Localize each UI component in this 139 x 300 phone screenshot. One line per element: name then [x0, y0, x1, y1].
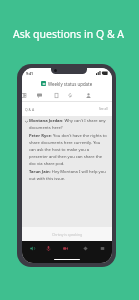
button[interactable]: Attendees [84, 91, 93, 100]
button[interactable]: Layout [22, 91, 28, 100]
button[interactable]: More options [97, 243, 107, 253]
staticText: 9:41 [26, 71, 34, 76]
staticText: Weekly status update [48, 81, 93, 87]
button[interactable]: Mute microphone [43, 243, 53, 253]
button[interactable]: Files [66, 91, 75, 100]
staticText: Ask questions in Q & A [13, 27, 125, 41]
button[interactable]: Speaker [27, 243, 37, 253]
button[interactable]: Notes [52, 91, 61, 100]
staticText: Tarun Jain: Hey Montana I will help you … [29, 169, 107, 182]
button[interactable]: Share screen [80, 243, 90, 253]
staticText: Peter Ryce: You don't have the rights to… [29, 133, 107, 167]
staticText: See all [99, 107, 108, 111]
staticText: Montana Jordan: Why can't I share any do… [29, 118, 107, 131]
staticText: Chrissy is speaking [52, 232, 83, 237]
button[interactable]: Stop camera [60, 243, 70, 253]
button[interactable]: Chat [35, 91, 44, 100]
staticText: Q & A [25, 107, 35, 112]
